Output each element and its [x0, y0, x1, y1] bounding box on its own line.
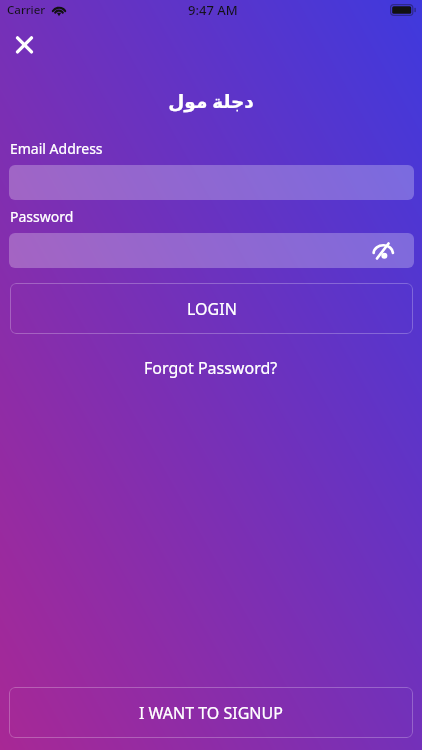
button[interactable]: Show password	[373, 243, 394, 259]
staticText: دجلة مول	[168, 88, 254, 113]
staticText: Forgot Password?	[144, 357, 278, 379]
staticText: I WANT TO SIGNUP	[139, 702, 283, 724]
staticText: Password	[10, 207, 74, 226]
staticText: LOGIN	[187, 298, 237, 320]
button[interactable]: Forgot Password?	[136, 352, 286, 384]
button[interactable]: LOGIN	[10, 283, 413, 334]
staticText: Carrier	[7, 2, 46, 18]
button[interactable]: Close	[9, 29, 40, 60]
staticText: Email Address	[10, 139, 103, 158]
staticText: 9:47 AM	[188, 1, 238, 19]
button[interactable]	[9, 165, 414, 200]
button[interactable]: I WANT TO SIGNUP	[9, 687, 413, 738]
button[interactable]: Show password	[9, 233, 414, 268]
